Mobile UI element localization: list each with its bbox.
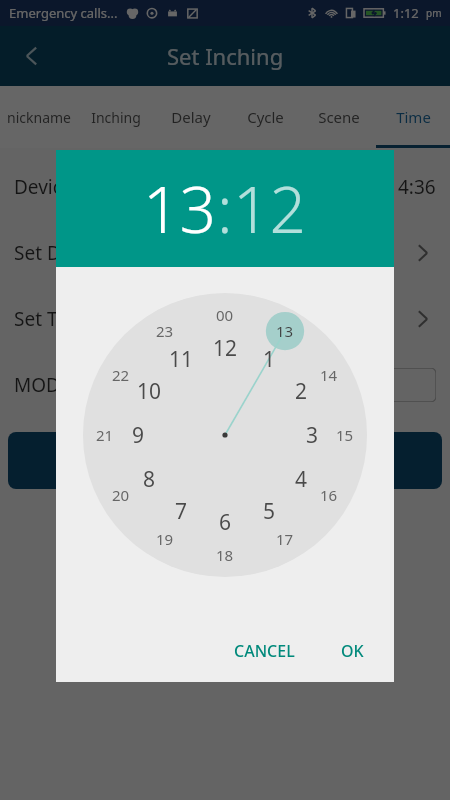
button[interactable]: Delay: [154, 86, 228, 148]
staticText: 14: [320, 365, 338, 385]
staticText: Time: [396, 107, 431, 127]
staticText: MODE: [14, 372, 71, 398]
staticText: 4:36: [398, 174, 436, 200]
button[interactable]: [8, 432, 442, 489]
staticText: 12: [213, 334, 238, 363]
button[interactable]: OK: [329, 632, 376, 670]
staticText: 21: [96, 425, 114, 445]
staticText: 5: [263, 497, 276, 526]
staticText: 10: [137, 377, 162, 406]
button[interactable]: Device Time: [0, 154, 450, 220]
staticText: Scene: [318, 107, 360, 127]
staticText: Set Inching: [167, 41, 284, 71]
staticText: 22: [112, 365, 130, 385]
staticText: 00: [216, 305, 234, 325]
button[interactable]: nickname: [0, 86, 77, 148]
staticText: 20: [112, 485, 130, 505]
staticText: 23: [156, 321, 174, 341]
staticText: Set Time: [14, 306, 91, 332]
staticText: OK: [341, 640, 364, 662]
button[interactable]: Scene: [302, 86, 376, 148]
staticText: Cycle: [247, 107, 284, 127]
staticText: 16: [320, 485, 338, 505]
staticText: Delay: [171, 107, 211, 127]
button[interactable]: 12: [233, 165, 307, 252]
staticText: pm: [426, 6, 442, 20]
staticText: 4: [295, 465, 308, 494]
button[interactable]: Cycle: [228, 86, 302, 148]
button[interactable]: Time: [376, 86, 450, 148]
staticText: 17: [276, 529, 294, 549]
staticText: 1: [263, 345, 276, 374]
staticText: 8: [143, 465, 156, 494]
staticText: 19: [156, 529, 174, 549]
button[interactable]: 12: [83, 293, 367, 577]
staticText: Emergency calls...: [9, 4, 118, 22]
staticText: Inching: [91, 108, 141, 127]
staticText: Device Time: [14, 174, 122, 200]
staticText: 9: [132, 421, 145, 450]
staticText: :: [217, 165, 233, 252]
staticText: CANCEL: [234, 640, 295, 662]
staticText: 18: [216, 545, 234, 565]
staticText: Set Date: [14, 240, 90, 266]
staticText: 6: [219, 508, 232, 537]
staticText: 7: [175, 497, 188, 526]
button[interactable]: Set Time: [0, 286, 450, 352]
staticText: 2: [295, 377, 308, 406]
button[interactable]: 13: [143, 165, 217, 252]
staticText: nickname: [7, 108, 71, 127]
staticText: 15: [336, 425, 354, 445]
staticText: 11: [169, 345, 194, 374]
button[interactable]: MODE: [0, 352, 450, 418]
staticText: 13: [276, 321, 294, 341]
button[interactable]: Set Date: [0, 220, 450, 286]
button[interactable]: Back: [8, 32, 56, 80]
staticText: 3: [306, 421, 319, 450]
button[interactable]: Inching: [77, 86, 154, 148]
button[interactable]: CANCEL: [222, 632, 307, 670]
staticText: 1:12: [393, 4, 419, 22]
